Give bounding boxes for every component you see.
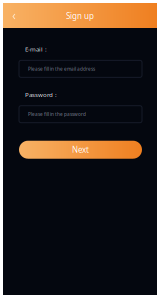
staticText: Sign up — [66, 11, 94, 21]
staticText: E-mail : — [25, 45, 47, 53]
button[interactable]: Please fill in the password — [19, 106, 142, 123]
staticText: Please fill in the email address — [28, 66, 95, 72]
button[interactable]: Back — [3, 3, 25, 28]
staticText: Please fill in the password — [28, 111, 86, 117]
button[interactable]: Next — [19, 141, 142, 159]
staticText: Next — [72, 144, 89, 155]
staticText: Password : — [25, 90, 57, 99]
button[interactable]: Please fill in the email address — [19, 60, 142, 77]
